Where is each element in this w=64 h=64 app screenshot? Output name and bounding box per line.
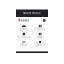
staticText: Rooms <box>18 19 28 22</box>
button[interactable]: Kitchen <box>32 24 48 32</box>
staticText: Bedroom <box>17 35 30 39</box>
staticText: Office <box>20 43 28 47</box>
button[interactable]: Living <box>16 24 32 32</box>
staticText: Kitchen <box>35 27 46 31</box>
staticText: Garage <box>36 35 45 39</box>
staticText: Garden <box>35 43 45 47</box>
button[interactable]: Garage <box>32 32 48 40</box>
button[interactable]: Office <box>16 40 32 48</box>
staticText: Smart Home <box>23 11 41 15</box>
button[interactable]: Bedroom <box>16 32 32 40</box>
button[interactable]: Add room <box>43 19 45 22</box>
staticText: Living <box>20 27 28 31</box>
button[interactable]: Garden <box>32 40 48 48</box>
